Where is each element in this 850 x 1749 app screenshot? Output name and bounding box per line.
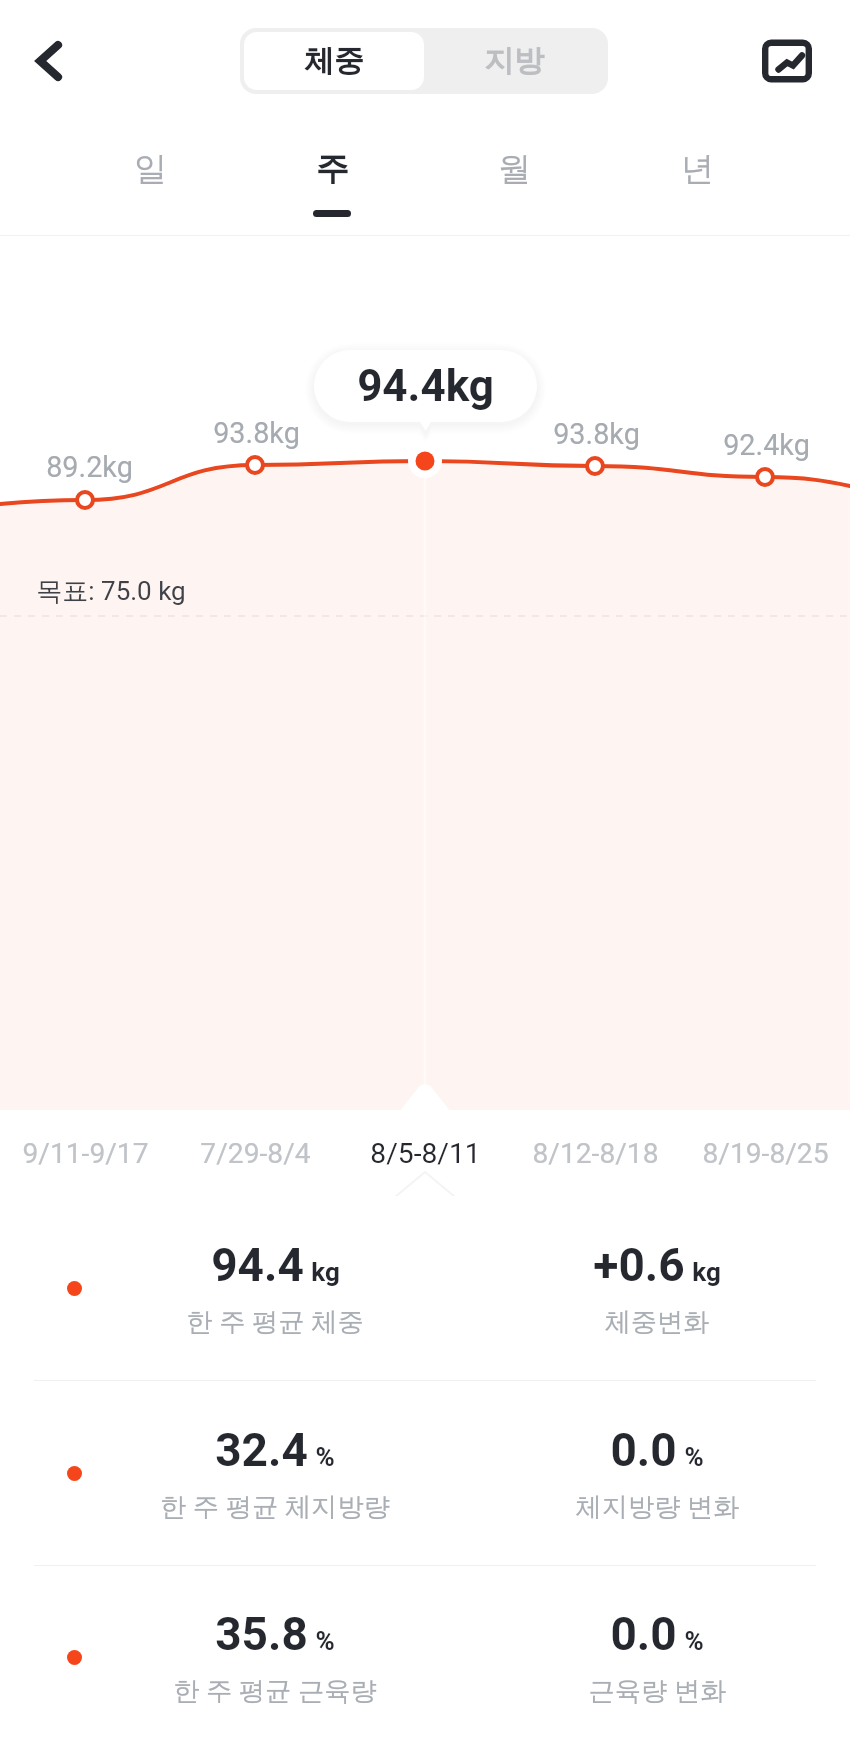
staticText: 목표: 75.0 kg: [36, 575, 186, 608]
button[interactable]: Back: [10, 21, 90, 101]
staticText: 년: [681, 148, 714, 190]
button[interactable]: 7/29-8/4: [170, 1110, 340, 1196]
staticText: 32.4: [215, 1423, 308, 1477]
staticText: 8/19-8/25: [702, 1137, 829, 1170]
staticText: %: [315, 1626, 335, 1656]
button[interactable]: 일: [59, 122, 241, 236]
staticText: 0.0: [610, 1607, 677, 1661]
staticText: %: [684, 1442, 704, 1472]
staticText: 일: [134, 148, 167, 190]
button[interactable]: 8/5-8/11: [340, 1110, 510, 1196]
staticText: 93.8kg: [553, 417, 640, 451]
staticText: %: [684, 1626, 704, 1656]
staticText: 89.2kg: [46, 450, 133, 484]
staticText: 한 주 평균 체지방량: [160, 1491, 390, 1524]
button[interactable]: 35.8: [0, 1566, 850, 1749]
staticText: 주: [316, 148, 349, 190]
button[interactable]: 32.4: [0, 1381, 850, 1565]
staticText: 9/11-9/17: [22, 1137, 149, 1170]
button[interactable]: 지방: [424, 32, 604, 90]
staticText: %: [315, 1442, 335, 1472]
staticText: 0.0: [610, 1423, 677, 1477]
button[interactable]: Chart view: [749, 23, 825, 99]
staticText: 8/12-8/18: [532, 1137, 659, 1170]
button[interactable]: 9/11-9/17: [0, 1110, 170, 1196]
staticText: 체중변화: [604, 1306, 710, 1339]
staticText: 한 주 평균 근육량: [173, 1675, 377, 1708]
button[interactable]: 8/19-8/25: [680, 1110, 850, 1196]
staticText: 8/5-8/11: [370, 1137, 481, 1170]
button[interactable]: 년: [606, 122, 789, 236]
staticText: kg: [311, 1257, 340, 1287]
button[interactable]: 주: [241, 122, 423, 236]
staticText: 92.4kg: [723, 428, 810, 462]
staticText: 체중: [304, 42, 364, 80]
staticText: 94.4kg: [357, 360, 494, 412]
staticText: 근육량 변화: [588, 1675, 727, 1708]
staticText: 35.8: [215, 1607, 308, 1661]
staticText: +0.6: [593, 1238, 685, 1292]
staticText: kg: [692, 1257, 721, 1287]
button[interactable]: 월: [423, 122, 606, 236]
button[interactable]: 8/12-8/18: [510, 1110, 680, 1196]
staticText: 한 주 평균 체중: [186, 1306, 364, 1339]
button[interactable]: 체중: [244, 32, 424, 90]
staticText: 94.4: [211, 1238, 304, 1292]
staticText: 체지방량 변화: [575, 1491, 740, 1524]
staticText: 93.8kg: [213, 416, 300, 450]
button[interactable]: 94.4: [0, 1196, 850, 1380]
staticText: 지방: [484, 42, 544, 80]
staticText: 7/29-8/4: [200, 1137, 311, 1170]
staticText: 월: [498, 148, 531, 190]
